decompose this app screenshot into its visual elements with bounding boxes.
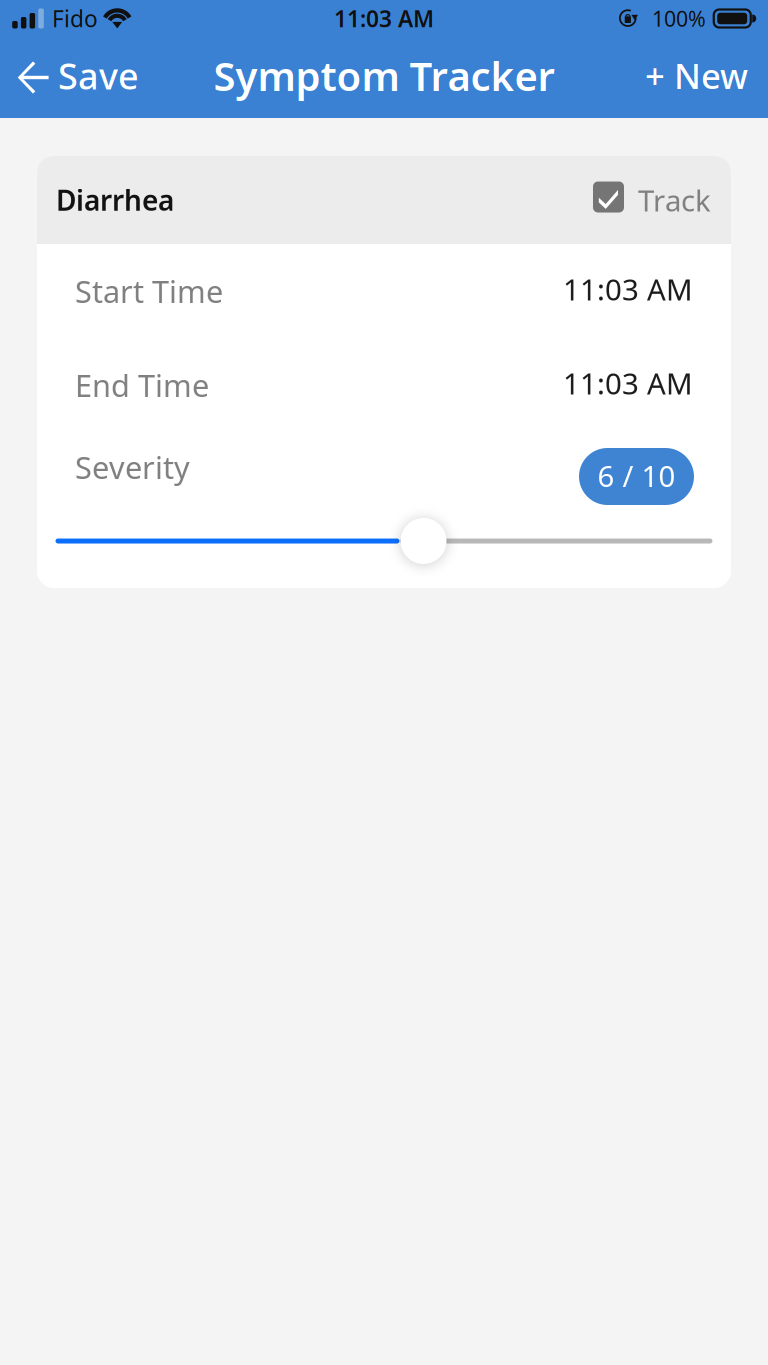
staticText: Start Time: [75, 271, 223, 311]
button[interactable]: End Time: [37, 338, 731, 432]
button[interactable]: Track: [593, 180, 711, 219]
staticText: Symptom Tracker: [213, 49, 554, 102]
staticText: 11:03 AM: [563, 363, 693, 402]
staticText: Fido: [52, 3, 98, 33]
staticText: End Time: [75, 365, 209, 405]
staticText: 6 / 10: [597, 456, 675, 495]
staticText: Severity: [75, 447, 190, 487]
staticText: Diarrhea: [56, 181, 174, 219]
button[interactable]: Start Time: [37, 244, 731, 338]
button[interactable]: Save: [0, 37, 155, 118]
staticText: Track: [638, 180, 711, 219]
staticText: 100%: [652, 4, 706, 33]
staticText: Save: [58, 52, 139, 99]
staticText: 11:03 AM: [563, 269, 693, 308]
button[interactable]: 6 / 10: [579, 446, 694, 503]
button[interactable]: + New: [629, 37, 768, 118]
staticText: 11:03 AM: [334, 3, 434, 33]
staticText: + New: [645, 52, 748, 98]
